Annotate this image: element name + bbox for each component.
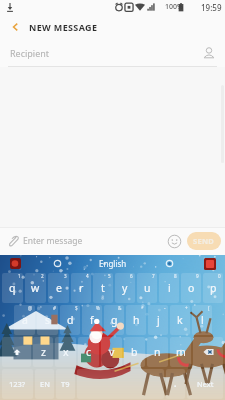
staticText: o	[188, 281, 195, 295]
staticText: 5	[108, 273, 111, 279]
button[interactable]: k	[170, 305, 190, 335]
staticText: (	[208, 305, 210, 311]
button[interactable]: a	[14, 305, 35, 335]
button[interactable]: c	[78, 337, 99, 367]
button[interactable]: Attach file	[5, 233, 21, 249]
staticText: v	[109, 345, 115, 359]
staticText: *	[141, 305, 144, 311]
staticText: NEW MESSAGE	[29, 21, 98, 33]
staticText: f	[90, 313, 94, 327]
staticText: @	[28, 305, 33, 311]
staticText: b	[131, 345, 138, 359]
button[interactable]: r	[71, 273, 91, 303]
staticText: j	[157, 313, 160, 327]
staticText: 7	[152, 273, 155, 279]
staticText: a	[22, 313, 28, 327]
button[interactable]: p	[203, 273, 223, 303]
button[interactable]: m	[170, 337, 191, 367]
button[interactable]: g	[104, 305, 124, 335]
staticText: u	[144, 281, 151, 295]
button[interactable]: l	[192, 305, 212, 335]
staticText: x	[63, 345, 69, 359]
staticText: 123?	[9, 379, 26, 389]
button[interactable]: Next	[187, 369, 223, 399]
staticText: Recipient	[10, 47, 50, 59]
staticText: #	[53, 305, 56, 311]
button[interactable]: b	[124, 337, 145, 367]
staticText: 4	[86, 273, 89, 279]
button[interactable]: Back	[5, 17, 25, 37]
staticText: English	[99, 258, 127, 269]
staticText: Next	[197, 379, 214, 389]
button[interactable]: w	[25, 273, 46, 303]
staticText: SEND	[193, 236, 215, 246]
button[interactable]: q	[2, 273, 23, 303]
staticText: d	[67, 313, 74, 327]
button[interactable]: SEND	[187, 232, 221, 250]
button[interactable]: u	[137, 273, 157, 303]
button[interactable]: s	[37, 305, 58, 335]
button[interactable]: i	[159, 273, 179, 303]
staticText: Enter message	[23, 235, 83, 247]
staticText: s	[45, 313, 51, 327]
staticText: T9	[61, 379, 70, 389]
staticText: q	[9, 281, 16, 295]
staticText: 6	[130, 273, 133, 279]
button[interactable]: Add recipient from contacts	[201, 45, 217, 61]
button[interactable]: .	[166, 369, 185, 399]
button[interactable]: e	[48, 273, 69, 303]
staticText: w	[31, 281, 40, 295]
button[interactable]: T9	[56, 369, 75, 399]
staticText: 1	[18, 273, 21, 279]
staticText: m	[176, 345, 186, 359]
button[interactable]: Keyboard theme	[10, 258, 21, 269]
staticText: e	[56, 281, 62, 295]
staticText: r	[79, 281, 84, 295]
button[interactable]: f	[82, 305, 102, 335]
button[interactable]: Previous	[54, 260, 61, 267]
button[interactable]: Next language	[166, 260, 173, 267]
staticText: 100%	[165, 2, 183, 12]
staticText: y	[122, 281, 128, 295]
staticText: t	[101, 281, 105, 295]
staticText: &	[118, 305, 122, 311]
staticText: g	[111, 313, 118, 327]
staticText: h	[133, 313, 140, 327]
staticText: 19:59	[201, 2, 222, 13]
button[interactable]: j	[148, 305, 168, 335]
staticText: 0	[218, 273, 221, 279]
button[interactable]: z	[33, 337, 53, 367]
staticText: 9	[196, 273, 199, 279]
button[interactable]: v	[101, 337, 122, 367]
button[interactable]: t	[93, 273, 113, 303]
staticText: p	[210, 281, 217, 295]
staticText: %	[96, 305, 100, 311]
button[interactable]: y	[115, 273, 135, 303]
button[interactable]: h	[126, 305, 146, 335]
staticText: 2	[41, 273, 44, 279]
staticText: 8	[174, 273, 177, 279]
button[interactable]: d	[60, 305, 80, 335]
button[interactable]: Keyboard settings	[204, 258, 216, 270]
button[interactable]: Space	[77, 369, 164, 399]
staticText: .	[174, 378, 177, 390]
button[interactable]: Shift	[2, 337, 31, 367]
button[interactable]: EN	[35, 369, 54, 399]
button[interactable]: x	[55, 337, 76, 367]
staticText: k	[177, 313, 183, 327]
staticText: n	[154, 345, 161, 359]
staticText: $	[75, 305, 78, 311]
staticText: 3	[64, 273, 67, 279]
staticText: c	[86, 345, 92, 359]
staticText: i	[168, 281, 171, 295]
button[interactable]: Emoji	[167, 234, 182, 249]
staticText: z	[41, 345, 46, 359]
button[interactable]: 123?	[2, 369, 33, 399]
button[interactable]: n	[147, 337, 168, 367]
button[interactable]: Backspace	[193, 337, 223, 367]
staticText: +	[185, 305, 188, 311]
staticText: -	[164, 305, 166, 311]
button[interactable]: o	[181, 273, 201, 303]
staticText: l	[201, 313, 204, 327]
staticText: EN	[40, 379, 50, 389]
